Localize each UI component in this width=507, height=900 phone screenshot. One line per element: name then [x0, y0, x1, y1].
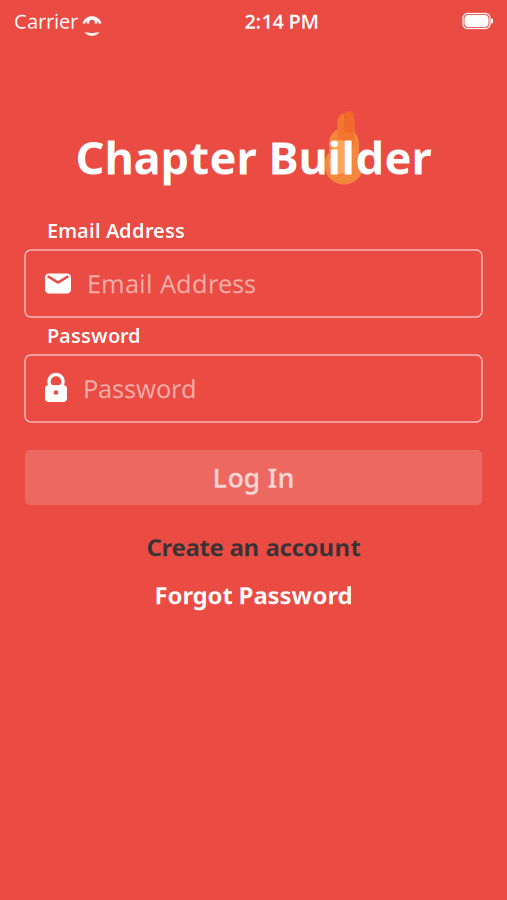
- staticText: Email Address: [47, 217, 185, 244]
- staticText: Password: [47, 322, 141, 349]
- staticText: Carrier: [14, 8, 78, 34]
- staticText: 2:14 PM: [244, 8, 319, 34]
- staticText: Email Address: [87, 267, 256, 300]
- staticText: Password: [83, 372, 197, 405]
- staticText: Log In: [212, 460, 294, 495]
- button[interactable]: Forgot Password: [0, 579, 507, 611]
- staticText: Forgot Password: [154, 579, 352, 611]
- staticText: Create an account: [146, 531, 360, 563]
- staticText: Chapter Builder: [75, 127, 431, 187]
- button[interactable]: Log In: [25, 450, 482, 505]
- button[interactable]: Create an account: [0, 531, 507, 563]
